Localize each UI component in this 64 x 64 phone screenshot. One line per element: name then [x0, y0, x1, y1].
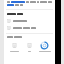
button[interactable]	[4, 17, 55, 24]
button[interactable]: Downloading	[37, 40, 52, 53]
button[interactable]: Document	[7, 40, 22, 53]
button[interactable]: File	[22, 40, 37, 53]
button[interactable]	[4, 24, 55, 31]
